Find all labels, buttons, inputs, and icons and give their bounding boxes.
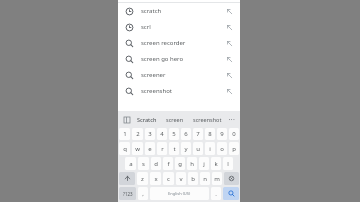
other: Insert scrl [226, 24, 233, 31]
button[interactable]: x [150, 172, 161, 185]
staticText: v [179, 175, 183, 183]
button[interactable]: 6 [181, 128, 191, 140]
button[interactable]: 3 [145, 128, 155, 140]
staticText: 7 [196, 130, 200, 138]
staticText: u [196, 145, 200, 153]
button[interactable]: s [138, 157, 149, 170]
button[interactable]: ?123 [119, 187, 136, 200]
button[interactable]: 2 [132, 128, 143, 140]
button[interactable]: screen recorder [118, 35, 240, 51]
button[interactable]: scrl [118, 19, 240, 35]
button[interactable]: Search [223, 187, 239, 200]
staticText: q [123, 145, 127, 153]
button[interactable]: . [211, 187, 221, 200]
button[interactable]: 0 [229, 128, 239, 140]
button[interactable]: b [188, 172, 198, 185]
button[interactable]: Space [150, 187, 209, 200]
staticText: i [209, 145, 211, 153]
staticText: screenshot [141, 87, 172, 95]
staticText: f [167, 160, 170, 168]
button[interactable]: screen go hero [118, 51, 240, 67]
staticText: b [191, 175, 195, 183]
button[interactable]: 7 [193, 128, 203, 140]
button[interactable]: 8 [205, 128, 215, 140]
button[interactable]: o [217, 142, 227, 155]
staticText: w [135, 145, 140, 153]
staticText: e [148, 145, 152, 153]
button[interactable]: g [175, 157, 185, 170]
button[interactable]: , [138, 187, 148, 200]
staticText: . [215, 190, 217, 198]
other: Insert scratch [226, 8, 233, 15]
staticText: scratch [141, 7, 162, 15]
staticText: screen recorder [141, 39, 186, 47]
staticText: 6 [184, 130, 188, 138]
button[interactable]: l [223, 157, 233, 170]
staticText: ?123 [123, 191, 133, 197]
staticText: c [167, 175, 170, 183]
button[interactable]: a [125, 157, 136, 170]
button[interactable]: w [132, 142, 143, 155]
staticText: 4 [160, 130, 164, 138]
button[interactable]: j [199, 157, 209, 170]
button[interactable]: e [145, 142, 155, 155]
staticText: h [190, 160, 194, 168]
button[interactable]: screener [118, 67, 240, 83]
staticText: scrl [141, 23, 151, 31]
button[interactable]: y [181, 142, 191, 155]
button[interactable]: 4 [157, 128, 167, 140]
button[interactable]: 5 [169, 128, 179, 140]
button[interactable]: Shift [119, 172, 135, 185]
other: Insert screen recorder [226, 40, 233, 47]
button[interactable]: d [151, 157, 161, 170]
button[interactable]: h [187, 157, 197, 170]
button[interactable]: u [193, 142, 203, 155]
other: Insert screener [226, 72, 233, 79]
button[interactable]: p [229, 142, 239, 155]
staticText: g [178, 160, 182, 168]
staticText: y [184, 145, 188, 153]
button[interactable]: Gboard menu [122, 115, 131, 124]
button[interactable]: More suggestions [227, 115, 236, 124]
staticText: r [161, 145, 164, 153]
button[interactable]: f [163, 157, 173, 170]
button[interactable]: screenshot [192, 116, 223, 123]
button[interactable]: 1 [119, 128, 130, 140]
staticText: screen go hero [141, 55, 184, 63]
staticText: n [203, 175, 207, 183]
button[interactable]: Scratch [136, 116, 158, 123]
button[interactable]: r [157, 142, 167, 155]
staticText: English (US) [168, 191, 191, 196]
button[interactable]: screenshot [118, 83, 240, 99]
staticText: screenshot [193, 116, 222, 123]
staticText: screener [141, 71, 166, 79]
staticText: o [220, 145, 224, 153]
staticText: 0 [232, 130, 236, 138]
button[interactable]: v [176, 172, 186, 185]
staticText: 9 [220, 130, 224, 138]
button[interactable]: k [211, 157, 221, 170]
staticText: j [203, 160, 205, 168]
staticText: z [141, 175, 144, 183]
staticText: 1 [123, 130, 127, 138]
button[interactable]: i [205, 142, 215, 155]
staticText: x [154, 175, 158, 183]
staticText: 8 [208, 130, 212, 138]
staticText: l [227, 160, 229, 168]
staticText: screen [166, 116, 184, 123]
staticText: t [173, 145, 176, 153]
button[interactable]: n [200, 172, 210, 185]
button[interactable]: m [212, 172, 222, 185]
staticText: Scratch [137, 116, 157, 123]
button[interactable]: 9 [217, 128, 227, 140]
button[interactable]: Backspace [224, 172, 239, 185]
button[interactable]: c [163, 172, 174, 185]
button[interactable]: t [169, 142, 179, 155]
button[interactable]: screen [165, 116, 185, 123]
button[interactable]: z [137, 172, 148, 185]
button[interactable]: scratch [118, 3, 240, 19]
button[interactable]: q [119, 142, 130, 155]
other: Insert screen go hero [226, 56, 233, 63]
staticText: m [214, 175, 220, 183]
staticText: 3 [148, 130, 152, 138]
